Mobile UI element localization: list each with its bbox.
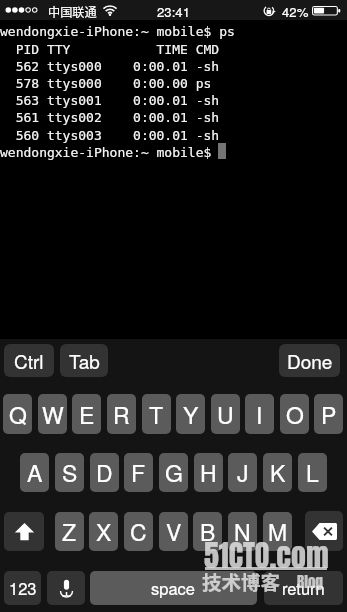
button[interactable]: F [124, 453, 153, 492]
staticText: P [321, 398, 337, 431]
button[interactable]: G [159, 453, 188, 492]
staticText: 563 ttys001 0:00.01 -sh [0, 93, 220, 108]
button[interactable]: K [263, 453, 292, 492]
button[interactable]: A [20, 453, 49, 492]
button[interactable]: W [38, 394, 67, 434]
staticText: wendongxie-iPhone:~ mobile$ [0, 145, 220, 160]
staticText: Z [62, 515, 77, 548]
staticText: 技术博客 [202, 567, 281, 595]
staticText: Blog [297, 570, 323, 593]
button[interactable]: Dictation [47, 571, 85, 605]
button[interactable]: space [90, 571, 257, 605]
staticText: B [200, 515, 216, 548]
button[interactable]: M [263, 512, 292, 551]
staticText: Done [287, 347, 333, 374]
button[interactable]: N [228, 512, 257, 551]
button[interactable]: Delete [305, 511, 343, 551]
button[interactable]: Shift [4, 512, 44, 551]
staticText: L [306, 456, 319, 489]
staticText: 561 ttys002 0:00.01 -sh [0, 110, 220, 125]
staticText: 560 ttys003 0:00.01 -sh [0, 128, 220, 143]
staticText: F [131, 456, 146, 489]
staticText: I [256, 398, 263, 431]
staticText: J [237, 456, 249, 489]
button[interactable]: D [90, 453, 119, 492]
staticText: S [62, 456, 78, 489]
staticText: T [149, 398, 164, 431]
staticText: 42% [282, 2, 309, 21]
button[interactable]: Tab [60, 344, 108, 377]
button[interactable]: U [211, 394, 240, 434]
staticText: C [130, 515, 147, 548]
staticText: 562 ttys000 0:00.01 -sh [0, 59, 220, 74]
button[interactable]: L [298, 453, 327, 492]
staticText: 123 [9, 576, 37, 600]
button[interactable]: P [314, 394, 343, 434]
button[interactable]: Q [3, 394, 32, 434]
button[interactable]: Ctrl [4, 344, 54, 377]
staticText: D [96, 456, 113, 489]
staticText: 中国联通 [48, 3, 97, 21]
staticText: R [113, 398, 130, 431]
staticText: 578 ttys000 0:00.00 ps [0, 76, 212, 91]
staticText: Y [183, 398, 199, 431]
button[interactable]: R [107, 394, 136, 434]
staticText: wendongxie-iPhone:~ mobile$ ps [0, 24, 235, 39]
staticText: A [27, 456, 43, 489]
button[interactable]: return [264, 571, 343, 605]
button[interactable]: E [72, 394, 101, 434]
staticText: Ctrl [14, 347, 44, 374]
staticText: 23:41 [157, 2, 190, 21]
staticText: Q [9, 398, 27, 431]
button[interactable]: T [142, 394, 171, 434]
staticText: V [166, 515, 182, 548]
button[interactable]: J [228, 453, 257, 492]
staticText: O [286, 398, 304, 431]
staticText: 51CTO.com [204, 533, 329, 578]
staticText: W [42, 398, 64, 431]
button[interactable]: H [194, 453, 223, 492]
staticText: E [79, 398, 95, 431]
button[interactable]: Z [55, 512, 84, 551]
button[interactable]: I [245, 394, 274, 434]
button[interactable]: O [280, 394, 309, 434]
staticText: Tab [69, 347, 100, 374]
button[interactable]: C [124, 512, 153, 551]
staticText: H [200, 456, 217, 489]
button[interactable]: V [159, 512, 188, 551]
staticText: return [282, 576, 325, 600]
button[interactable]: Done [279, 344, 340, 377]
staticText: G [165, 456, 183, 489]
staticText: X [96, 515, 112, 548]
staticText: space [151, 576, 196, 600]
button[interactable]: S [55, 453, 84, 492]
button[interactable]: Y [176, 394, 205, 434]
staticText: U [217, 398, 234, 431]
button[interactable]: X [89, 512, 118, 551]
staticText: N [234, 515, 251, 548]
button[interactable]: B [193, 512, 222, 551]
staticText: K [270, 456, 286, 489]
button[interactable]: 123 [4, 571, 41, 605]
staticText: PID TTY TIME CMD [0, 42, 220, 57]
staticText: M [268, 515, 288, 548]
